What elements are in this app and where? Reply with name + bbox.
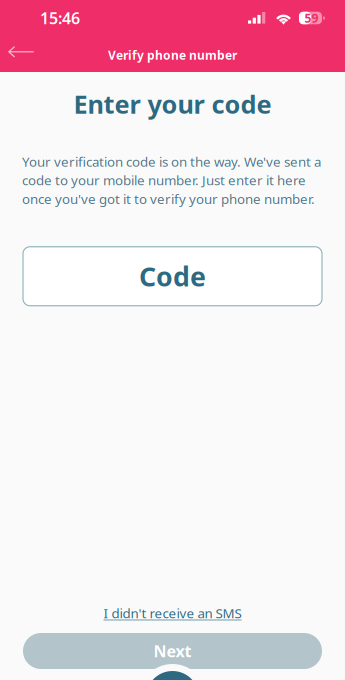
button[interactable]: I didn't receive an SMS xyxy=(97,600,247,626)
button[interactable]: Next xyxy=(23,633,322,669)
staticText: 15:46 xyxy=(40,7,80,29)
staticText: I didn't receive an SMS xyxy=(103,604,241,622)
staticText: Next xyxy=(153,640,191,662)
staticText: Code xyxy=(139,259,206,294)
button[interactable]: Code xyxy=(23,247,322,306)
staticText: Enter your code xyxy=(73,87,271,121)
button[interactable]: Back xyxy=(0,36,52,72)
staticText: Your verification code is on the way. We… xyxy=(22,153,321,208)
staticText: 59 xyxy=(304,10,318,26)
staticText: Verify phone number xyxy=(108,47,237,63)
